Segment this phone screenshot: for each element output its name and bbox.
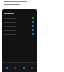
button[interactable] <box>2 11 37 16</box>
button[interactable]: Tab 3 <box>29 65 35 71</box>
button[interactable] <box>2 32 37 36</box>
button[interactable] <box>2 20 37 24</box>
button[interactable] <box>2 24 37 28</box>
button[interactable]: Tab 0 <box>4 65 10 71</box>
button[interactable] <box>2 28 37 32</box>
button[interactable]: Tab 1 <box>12 65 18 71</box>
button[interactable]: Tab 2 <box>21 65 27 71</box>
button[interactable] <box>2 16 37 20</box>
